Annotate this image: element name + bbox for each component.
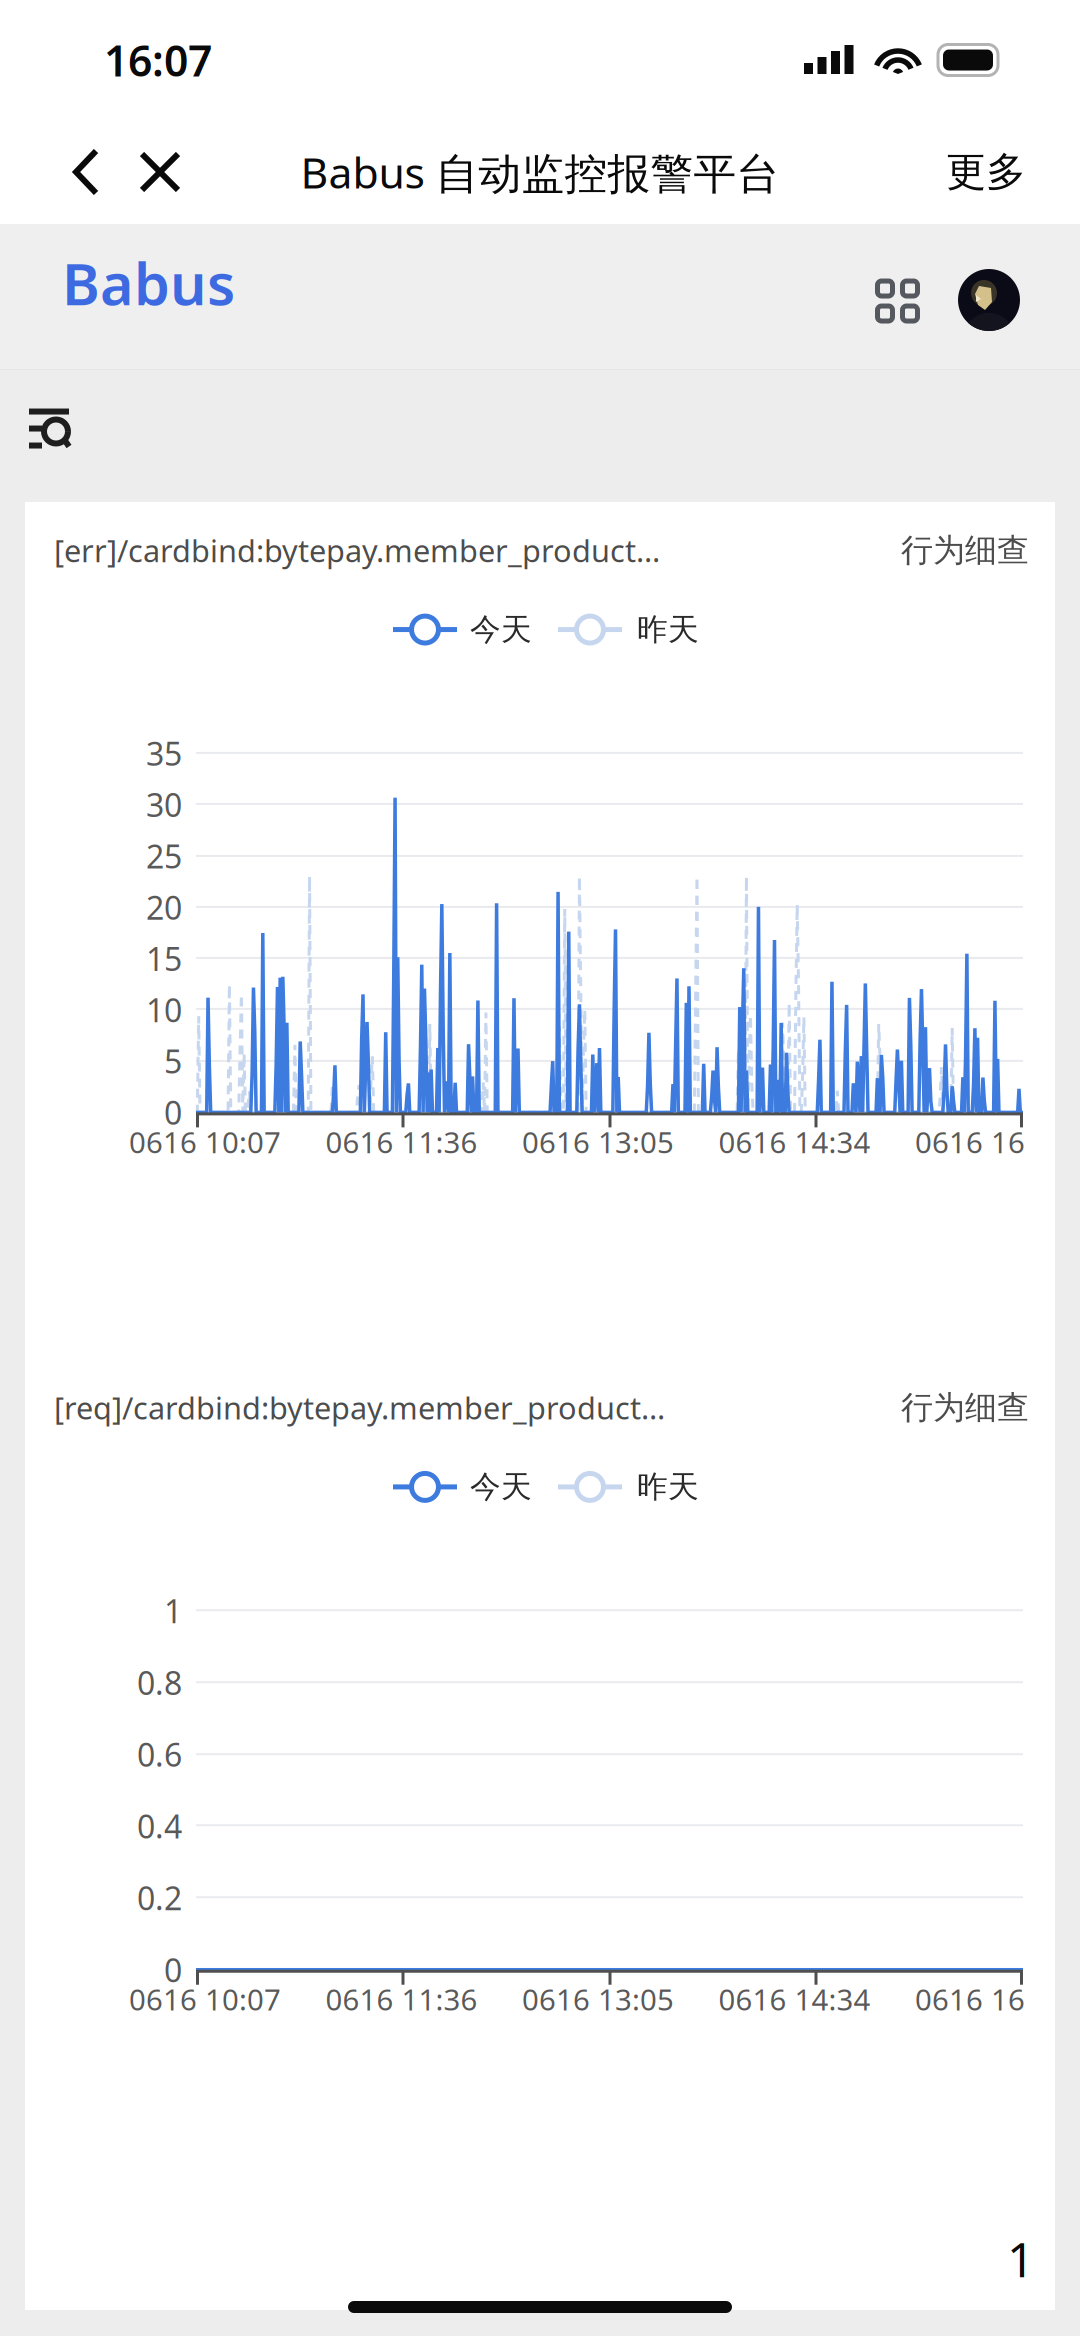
staticText: [err]/cardbind:bytepay.member_product… [54,530,660,571]
staticText: 更多 [946,147,1026,196]
button[interactable]: 行为细查 [901,1388,1029,1427]
staticText: 0616 16 [915,1980,1025,2019]
staticText: 15 [146,937,182,980]
staticText: 1 [164,1589,182,1632]
button[interactable]: 更多 [946,118,1026,226]
staticText: 35 [146,732,182,775]
staticText: 0616 14:34 [718,1980,870,2019]
staticText: 0 [164,1091,182,1134]
staticText: 20 [146,886,182,928]
staticText: 16:07 [104,32,212,88]
staticText: 昨天 [637,611,699,648]
staticText: 0.8 [137,1661,182,1704]
staticText: 今天 [470,1468,532,1506]
staticText: 0616 10:07 [129,1122,281,1161]
staticText: 0616 14:34 [718,1122,870,1161]
staticText: 0.4 [137,1805,182,1847]
staticText: 行为细查 [901,531,1029,570]
staticText: 30 [146,783,182,826]
staticText: Babus [62,245,235,321]
button[interactable]: Apps [875,252,920,341]
staticText: 0 [164,1948,182,1991]
staticText: 10 [146,989,182,1031]
button[interactable]: Profile [920,252,1020,342]
staticText: 0616 10:07 [129,1980,281,2019]
button[interactable]: Filter [0,380,72,492]
staticText: 1 [1007,2227,1034,2290]
staticText: 0616 16 [915,1122,1025,1161]
staticText: 0616 13:05 [522,1122,674,1161]
staticText: 25 [146,835,182,877]
staticText: 0616 11:36 [325,1122,477,1161]
staticText: 0.2 [137,1877,182,1919]
staticText: 0616 11:36 [325,1980,477,2019]
button[interactable]: 行为细查 [901,531,1029,570]
button[interactable]: Back [52,118,120,226]
staticText: 5 [164,1040,182,1082]
staticText: 行为细查 [901,1388,1029,1427]
staticText: 0616 13:05 [522,1980,674,2019]
staticText: 0.6 [137,1733,182,1776]
staticText: 今天 [470,611,532,648]
staticText: 昨天 [637,1468,699,1506]
button[interactable]: Close [120,118,200,226]
staticText: [req]/cardbind:bytepay.member_product… [54,1387,665,1428]
staticText: Babus 自动监控报警平台 [300,144,779,200]
